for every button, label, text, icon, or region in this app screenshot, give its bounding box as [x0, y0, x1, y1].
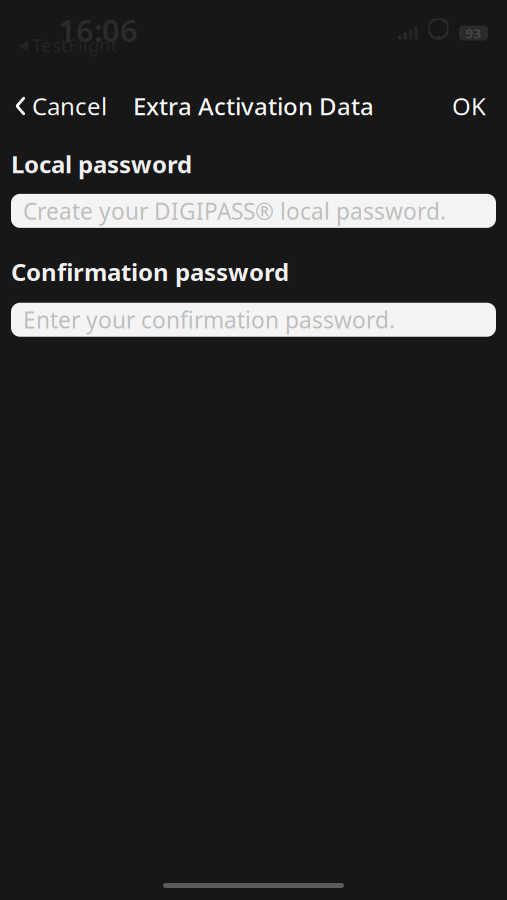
staticText: TestFlight [32, 33, 118, 57]
staticText: ◀ [18, 37, 28, 52]
button[interactable]: Create your DIGIPASS® local password. [11, 194, 496, 228]
staticText: 16:06 [58, 10, 138, 50]
button[interactable]: Enter your confirmation password. [11, 303, 496, 337]
button[interactable]: OK [440, 84, 507, 128]
staticText: Extra Activation Data [133, 90, 374, 122]
staticText: Cancel [32, 90, 107, 122]
staticText: 93 [465, 24, 481, 42]
staticText: Confirmation password [11, 256, 289, 288]
button[interactable]: Cancel [0, 84, 117, 128]
staticText: Create your DIGIPASS® local password. [23, 196, 446, 226]
staticText: Local password [11, 148, 192, 180]
staticText: Enter your confirmation password. [23, 305, 395, 335]
staticText: OK [452, 90, 486, 122]
